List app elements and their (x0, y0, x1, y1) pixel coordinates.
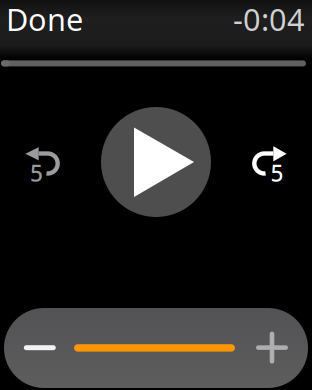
button[interactable]: Skip forward 5 seconds (246, 139, 310, 187)
button[interactable]: Play (101, 107, 211, 217)
staticText: Done (6, 0, 83, 39)
staticText: -0:04 (233, 0, 305, 39)
staticText: 5 (30, 158, 43, 188)
staticText: 5 (270, 158, 283, 188)
button[interactable]: Done (6, 0, 106, 41)
button[interactable]: Skip back 5 seconds (2, 139, 66, 187)
button[interactable]: Volume (4, 308, 308, 388)
